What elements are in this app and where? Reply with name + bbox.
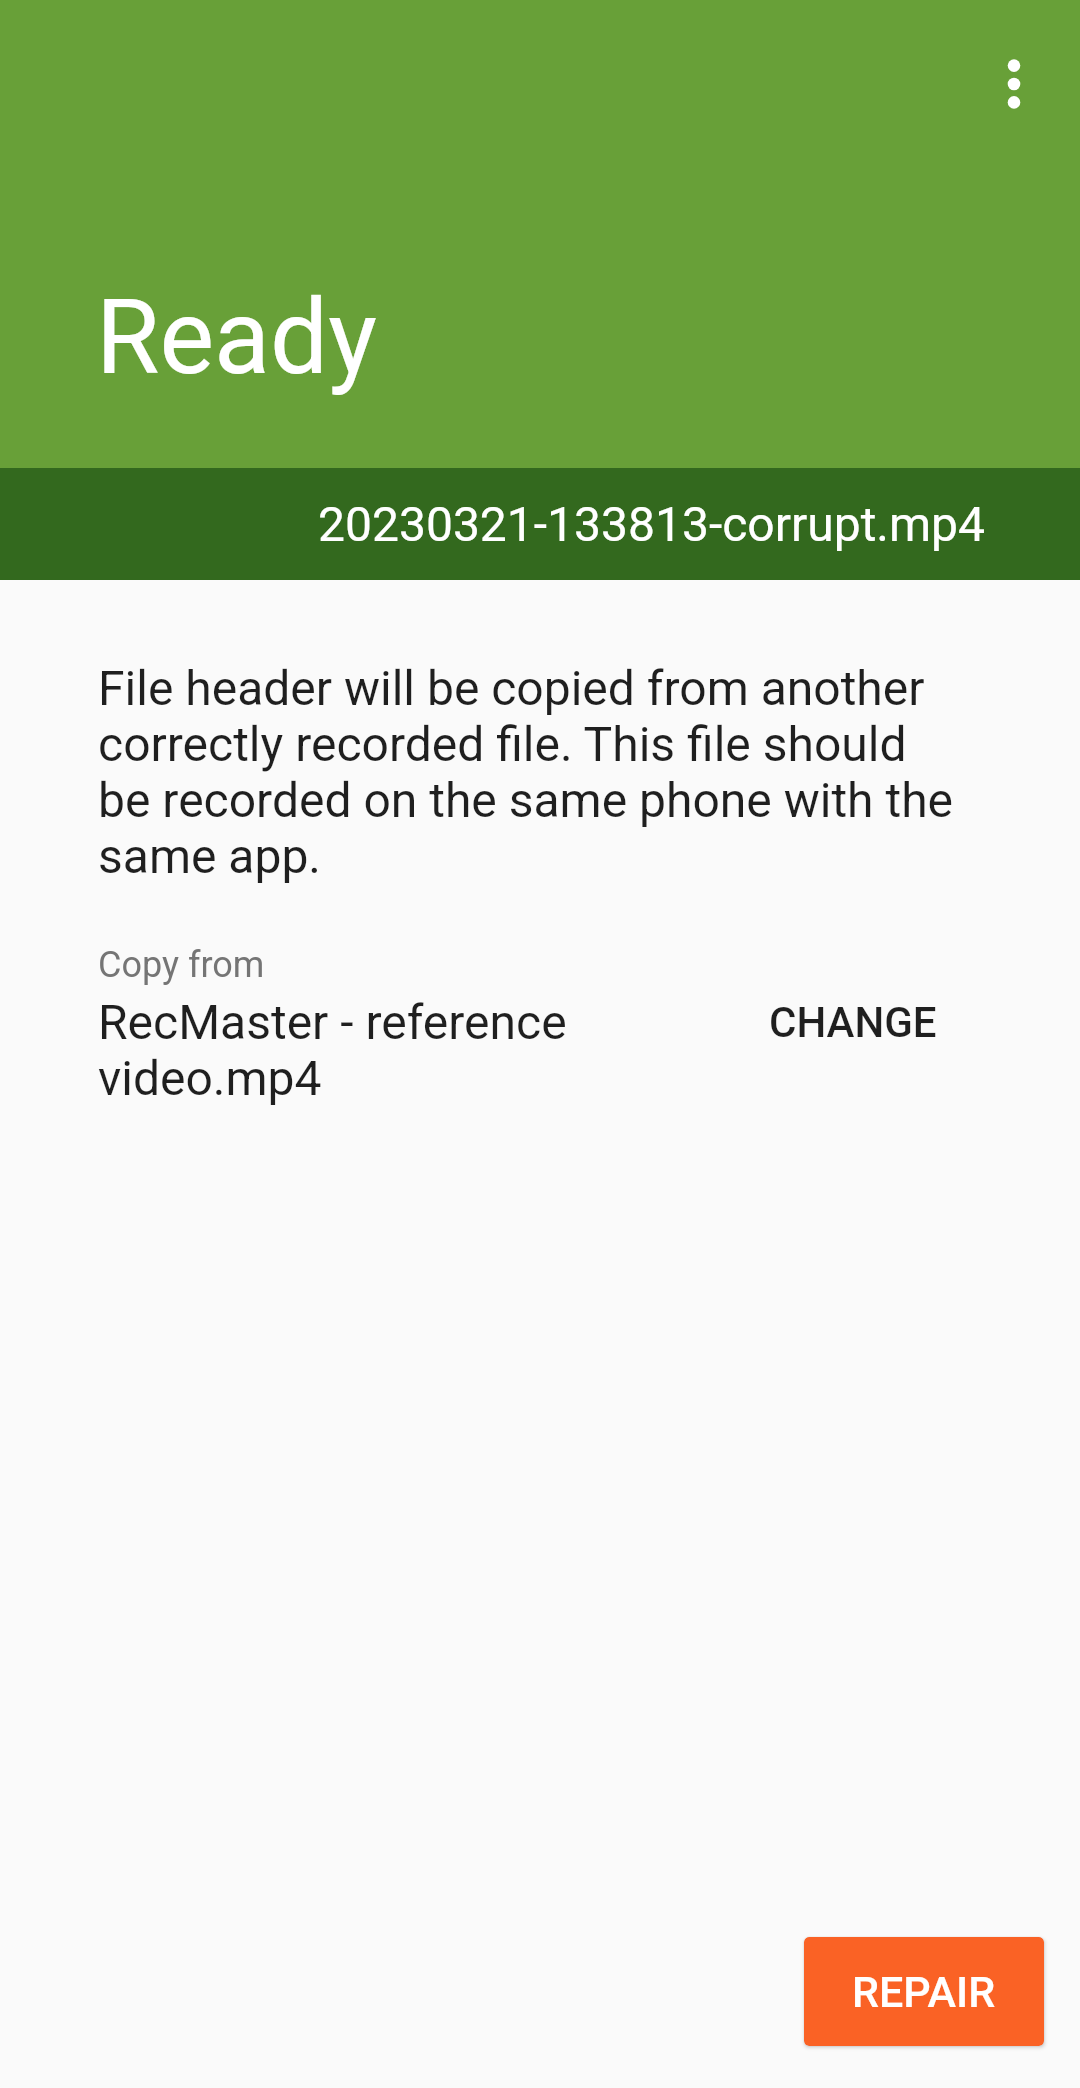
staticText: Ready: [96, 277, 377, 398]
staticText: 20230321-133813-corrupt.mp4: [318, 496, 986, 552]
button[interactable]: REPAIR: [804, 1937, 1044, 2046]
button[interactable]: CHANGE: [721, 962, 985, 1083]
staticText: File header will be copied from another …: [98, 660, 958, 884]
staticText: Copy from: [98, 944, 265, 986]
button[interactable]: More options: [966, 36, 1062, 132]
staticText: REPAIR: [852, 1967, 996, 2017]
staticText: CHANGE: [769, 998, 937, 1047]
staticText: RecMaster - reference video.mp4: [98, 994, 658, 1106]
